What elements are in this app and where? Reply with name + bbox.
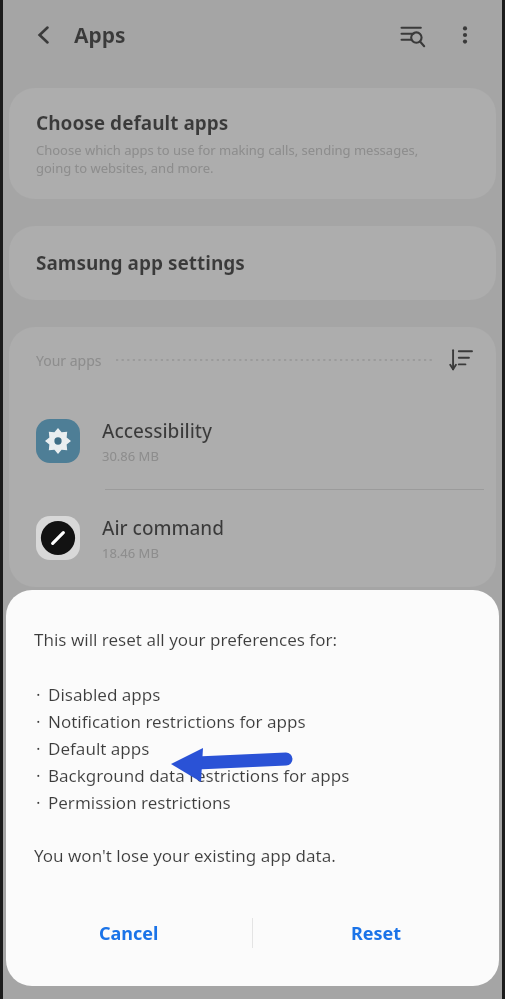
staticText: Choose default apps [36, 110, 229, 136]
staticText: Samsung app settings [36, 250, 245, 276]
staticText: · [36, 683, 41, 706]
staticText: · [36, 710, 41, 733]
staticText: · [36, 791, 41, 814]
staticText: Background data restrictions for apps [48, 764, 350, 787]
button[interactable]: More options [444, 14, 486, 56]
staticText: Apps [74, 21, 126, 50]
staticText: Disabled apps [48, 683, 161, 706]
button[interactable]: Samsung app settings [9, 226, 496, 300]
staticText: Choose which apps to use for making call… [36, 141, 456, 177]
staticText: This will reset all your preferences for… [34, 628, 337, 651]
button[interactable]: Air command [9, 490, 496, 586]
staticText: 18.46 MB [102, 544, 159, 562]
button[interactable]: Sort [444, 343, 478, 377]
staticText: Cancel [99, 921, 159, 946]
staticText: You won't lose your existing app data. [34, 844, 336, 867]
staticText: Permission restrictions [48, 791, 231, 814]
staticText: Reset [351, 921, 402, 946]
staticText: · [36, 737, 41, 760]
staticText: Your apps [36, 351, 102, 370]
staticText: · [36, 764, 41, 787]
button[interactable]: Choose default apps [9, 88, 496, 199]
staticText: Accessibility [102, 418, 213, 444]
button[interactable]: Reset [253, 894, 499, 972]
button[interactable]: Search [392, 14, 434, 56]
button[interactable]: Back [24, 15, 64, 55]
staticText: Air command [102, 515, 225, 541]
button[interactable]: Cancel [6, 894, 252, 972]
staticText: Default apps [48, 737, 150, 760]
button[interactable]: Accessibility [9, 393, 496, 489]
staticText: Notification restrictions for apps [48, 710, 306, 733]
staticText: 30.86 MB [102, 447, 159, 465]
